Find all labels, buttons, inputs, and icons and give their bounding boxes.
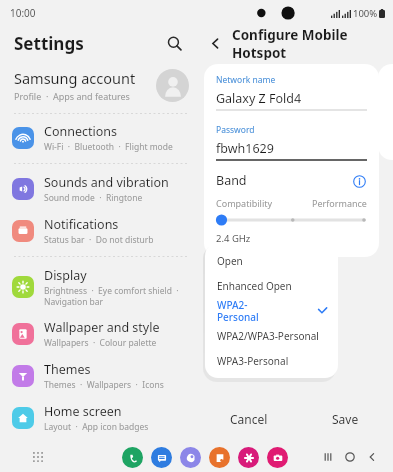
button[interactable]: Home <box>339 446 361 468</box>
staticText: WPA3-Personal <box>217 354 289 368</box>
button[interactable]: Enhanced Open <box>205 273 338 298</box>
staticText: Themes <box>44 361 91 378</box>
button[interactable]: Band information <box>351 173 367 189</box>
staticText: Sounds and vibration <box>44 174 169 191</box>
staticText: Wallpapers · Colour palette <box>44 337 157 349</box>
button[interactable]: Notifications <box>0 210 201 252</box>
staticText: Settings <box>14 32 84 55</box>
button[interactable]: Display <box>0 261 201 313</box>
button[interactable]: Home screen <box>0 397 201 439</box>
button[interactable]: Sounds and vibration <box>0 168 201 210</box>
staticText: Layout · App icon badges <box>44 421 149 433</box>
button[interactable]: Internet <box>180 447 201 468</box>
staticText: Notifications <box>44 216 119 233</box>
staticText: WPA2-Personal <box>217 298 267 323</box>
staticText: 100% <box>353 7 378 20</box>
staticText: Display <box>44 267 87 284</box>
staticText: 2.4 GHz <box>216 232 251 245</box>
staticText: Configure Mobile Hotspot <box>232 26 393 60</box>
staticText: Brightness · Eye comfort shield · Naviga… <box>44 285 179 307</box>
button[interactable]: Wallpaper and style <box>0 313 201 355</box>
button[interactable]: Cancel <box>201 404 297 434</box>
button[interactable]: WPA3-Personal <box>205 348 338 373</box>
button[interactable]: Messages <box>151 447 172 468</box>
button[interactable]: Notes <box>209 447 230 468</box>
button[interactable]: Apps <box>27 446 49 468</box>
staticText: 10:00 <box>10 6 36 20</box>
staticText: Enhanced Open <box>217 279 292 293</box>
button[interactable]: Gallery <box>238 447 259 468</box>
button[interactable]: WPA2-Personal <box>205 298 338 323</box>
staticText: Network name <box>216 74 276 86</box>
staticText: Connections <box>44 123 117 140</box>
staticText: Status bar · Do not disturb <box>44 234 154 246</box>
staticText: Themes · Wallpapers · Icons <box>44 379 164 391</box>
staticText: Save <box>332 411 359 427</box>
staticText: Wallpaper and style <box>44 319 160 336</box>
staticText: Home screen <box>44 403 122 420</box>
staticText: Password <box>216 124 255 136</box>
staticText: Samsung account <box>14 68 136 88</box>
staticText: Profile · Apps and features <box>14 90 130 102</box>
button[interactable]: Themes <box>0 355 201 397</box>
button[interactable] <box>216 214 367 226</box>
staticText: Performance <box>312 197 367 209</box>
button[interactable]: Open <box>205 248 338 273</box>
staticText: fbwh1629 <box>216 140 274 157</box>
button[interactable]: Search settings <box>161 30 187 56</box>
button[interactable]: Samsung account <box>0 60 201 110</box>
button[interactable]: Back <box>361 446 383 468</box>
button[interactable]: Camera <box>267 447 288 468</box>
staticText: Sound mode · Ringtone <box>44 192 143 204</box>
staticText: Wi-Fi · Bluetooth · Flight mode <box>44 141 173 153</box>
staticText: Band <box>216 172 247 189</box>
button[interactable]: Connections <box>0 117 201 159</box>
button[interactable]: Save <box>297 404 393 434</box>
button[interactable]: Recents <box>317 446 339 468</box>
button[interactable]: WPA2/WPA3-Personal <box>205 323 338 348</box>
staticText: Cancel <box>230 411 268 427</box>
staticText: WPA2/WPA3-Personal <box>217 329 319 343</box>
staticText: Open <box>217 254 243 268</box>
button[interactable]: Phone <box>122 447 143 468</box>
staticText: Compatibility <box>216 197 273 209</box>
button[interactable]: Back <box>201 29 229 57</box>
staticText: Galaxy Z Fold4 <box>216 90 302 107</box>
